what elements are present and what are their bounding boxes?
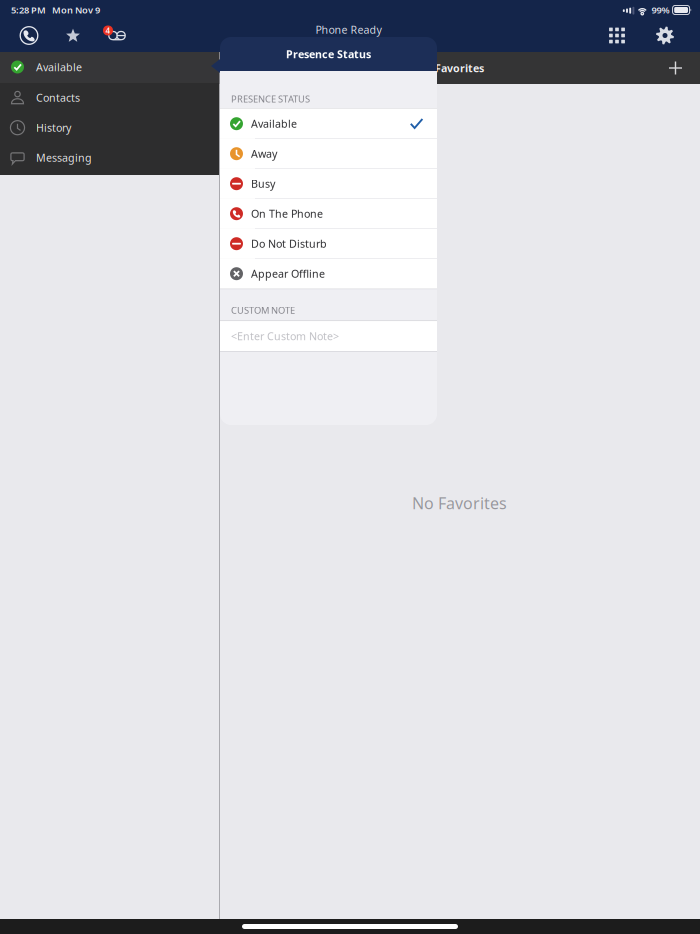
staticText: CUSTOM NOTE [231,304,295,316]
button[interactable]: Messaging [0,143,219,173]
button[interactable]: Favorites [57,19,89,51]
staticText: Available [251,117,297,131]
button[interactable]: History [0,113,219,143]
staticText: Phone Ready [315,22,381,37]
button[interactable]: Available [0,52,219,82]
staticText: Do Not Disturb [251,237,327,251]
button[interactable]: Settings [649,19,681,51]
staticText: Mon Nov 9 [52,4,100,16]
staticText: Favorites [435,61,484,75]
staticText: On The Phone [251,207,323,221]
staticText: Contacts [36,91,80,105]
staticText: <Enter Custom Note> [231,329,339,343]
staticText: Appear Offline [251,267,325,281]
staticText: Available [36,60,82,74]
staticText: No Favorites [412,492,507,514]
button[interactable]: Contacts [0,83,219,113]
staticText: PRESENCE STATUS [231,93,310,105]
button[interactable]: Keypad [601,19,633,51]
button[interactable]: Voicemail [95,19,134,51]
staticText: Presence Status [286,47,371,61]
staticText: 99% [652,4,670,16]
button[interactable]: On The Phone [220,199,437,229]
staticText: Messaging [36,151,92,165]
button[interactable]: Do Not Disturb [220,229,437,259]
staticText: Busy [251,177,275,191]
staticText: History [36,121,71,135]
staticText: Away [251,147,277,161]
staticText: 5:28 PM [11,4,46,16]
button[interactable]: <Enter Custom Note> [220,321,437,351]
staticText: 4 [105,25,110,36]
button[interactable]: Dialer [13,19,45,51]
button[interactable]: Appear Offline [220,259,437,289]
button[interactable]: Busy [220,169,437,199]
button[interactable]: Away [220,139,437,169]
button[interactable]: Available [220,109,437,139]
button[interactable]: Add favorite [660,52,691,83]
